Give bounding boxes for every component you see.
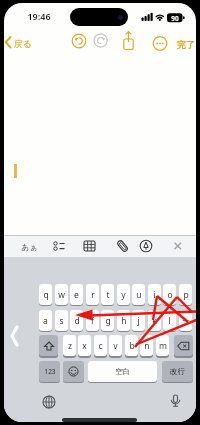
button[interactable]: l bbox=[163, 310, 176, 331]
staticText: 完了 bbox=[177, 39, 195, 50]
button[interactable]: r bbox=[86, 284, 99, 305]
staticText: i bbox=[153, 289, 156, 301]
button[interactable]: 空白 bbox=[88, 361, 157, 382]
button[interactable]: x bbox=[78, 335, 91, 356]
staticText: k bbox=[152, 315, 157, 327]
staticText: b bbox=[129, 340, 135, 352]
staticText: ー bbox=[182, 316, 189, 325]
staticText: s bbox=[59, 315, 64, 327]
staticText: 改行 bbox=[170, 367, 185, 376]
button[interactable]: 123 bbox=[39, 361, 60, 382]
button[interactable]: v bbox=[109, 335, 122, 356]
staticText: g bbox=[105, 315, 111, 327]
button[interactable]: i bbox=[148, 284, 161, 305]
button[interactable]: d bbox=[70, 310, 83, 331]
staticText: a bbox=[43, 315, 48, 327]
staticText: r bbox=[91, 289, 95, 301]
staticText: m bbox=[159, 340, 167, 352]
button[interactable] bbox=[39, 335, 58, 356]
button[interactable]: m bbox=[156, 335, 169, 356]
button[interactable] bbox=[174, 335, 193, 356]
button[interactable]: z bbox=[63, 335, 76, 356]
staticText: 戻る bbox=[13, 38, 32, 49]
staticText: o bbox=[167, 289, 173, 301]
staticText: q bbox=[43, 289, 49, 301]
staticText: 123 bbox=[44, 367, 56, 376]
staticText: p bbox=[183, 289, 189, 301]
button[interactable]: 改行 bbox=[162, 361, 193, 382]
button[interactable]: f bbox=[86, 310, 99, 331]
staticText: あぁ bbox=[21, 242, 38, 252]
button[interactable]: k bbox=[148, 310, 161, 331]
button[interactable]: g bbox=[101, 310, 114, 331]
staticText: x bbox=[82, 340, 87, 352]
button[interactable]: e bbox=[70, 284, 83, 305]
button[interactable]: w bbox=[55, 284, 68, 305]
staticText: j bbox=[137, 315, 140, 327]
staticText: y bbox=[121, 289, 126, 301]
button[interactable]: q bbox=[39, 284, 52, 305]
button[interactable]: ー bbox=[179, 310, 192, 331]
staticText: t bbox=[106, 289, 110, 301]
staticText: z bbox=[68, 340, 72, 352]
button[interactable]: h bbox=[117, 310, 130, 331]
staticText: v bbox=[113, 340, 118, 352]
button[interactable]: 完了 bbox=[174, 38, 196, 50]
button[interactable]: n bbox=[140, 335, 153, 356]
staticText: 90 bbox=[171, 14, 179, 23]
button[interactable] bbox=[63, 361, 84, 382]
staticText: u bbox=[136, 289, 142, 301]
button[interactable]: a bbox=[39, 310, 52, 331]
staticText: e bbox=[74, 289, 79, 301]
staticText: d bbox=[74, 315, 80, 327]
button[interactable]: あぁ bbox=[21, 240, 38, 253]
button[interactable]: b bbox=[125, 335, 138, 356]
button[interactable]: c bbox=[94, 335, 107, 356]
staticText: l bbox=[168, 315, 171, 327]
button[interactable]: s bbox=[55, 310, 68, 331]
button[interactable]: y bbox=[117, 284, 130, 305]
staticText: c bbox=[98, 340, 103, 352]
staticText: w bbox=[58, 289, 65, 301]
button[interactable]: p bbox=[179, 284, 192, 305]
staticText: 19:46 bbox=[27, 10, 51, 22]
staticText: 空白 bbox=[115, 367, 130, 376]
staticText: n bbox=[144, 340, 150, 352]
staticText: f bbox=[91, 315, 94, 327]
button[interactable]: j bbox=[132, 310, 145, 331]
button[interactable]: u bbox=[132, 284, 145, 305]
button[interactable]: o bbox=[163, 284, 176, 305]
button[interactable]: t bbox=[101, 284, 114, 305]
staticText: h bbox=[121, 315, 127, 327]
